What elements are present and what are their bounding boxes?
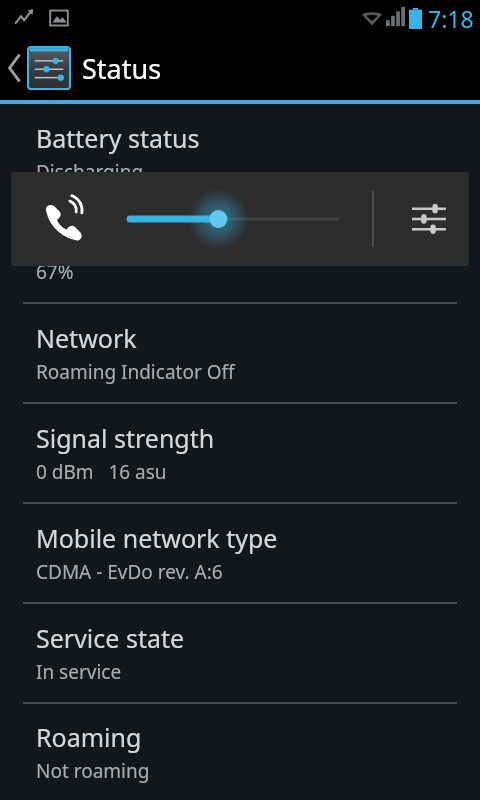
staticText: Battery status [36,121,200,155]
staticText: Battery level [36,221,182,255]
button[interactable]: Network [0,304,480,402]
staticText: Roaming Indicator Off [36,359,235,385]
staticText: Not roaming [36,758,150,784]
staticText: Service state [36,621,185,655]
staticText: Roaming [36,720,142,754]
staticText: In service [36,659,122,685]
staticText: 0 dBm 16 asu [36,459,167,485]
staticText: 67% [36,259,74,285]
button[interactable]: Navigate up [0,47,72,89]
staticText: Signal strength [36,421,215,455]
other: In-call volume [42,197,86,241]
button[interactable]: Roaming [0,704,480,800]
button[interactable]: Signal strength [0,404,480,502]
staticText: CDMA - EvDo rev. A:6 [36,559,223,585]
staticText: 7:18 [428,3,474,34]
button[interactable]: Mobile network type [0,504,480,602]
button[interactable]: Battery level [0,204,480,302]
button[interactable]: Battery status [0,104,480,202]
button[interactable]: Volume slider [119,189,349,249]
button[interactable]: Service state [0,604,480,702]
staticText: Mobile network type [36,521,278,555]
staticText: Status [82,50,162,87]
button[interactable]: Sound settings [401,191,457,247]
staticText: Discharging [36,159,144,185]
staticText: Network [36,321,137,355]
